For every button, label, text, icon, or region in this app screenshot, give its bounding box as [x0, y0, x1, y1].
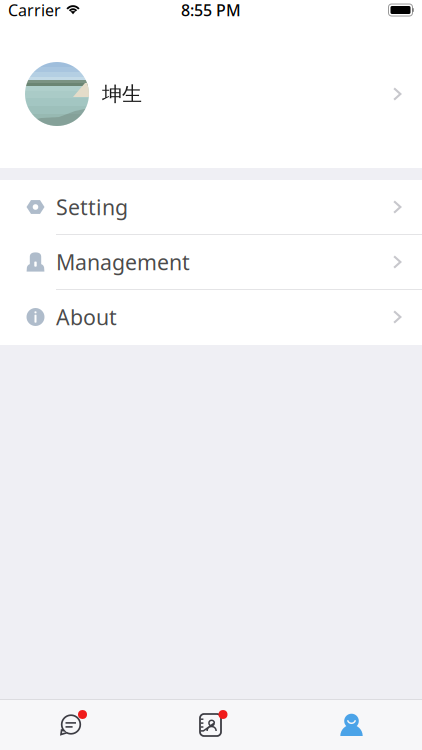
- staticText: Setting: [56, 193, 128, 221]
- button[interactable]: Management: [0, 235, 422, 290]
- staticText: 坤生: [102, 82, 142, 106]
- button[interactable]: Profile: [321, 703, 381, 747]
- button[interactable]: 坤生: [0, 20, 422, 168]
- button[interactable]: Messages: [40, 703, 100, 747]
- button[interactable]: Setting: [0, 180, 422, 235]
- button[interactable]: Contacts: [180, 703, 240, 747]
- staticText: About: [56, 303, 117, 331]
- staticText: Management: [56, 248, 190, 276]
- button[interactable]: About: [0, 290, 422, 345]
- staticText: Carrier: [8, 0, 61, 21]
- staticText: 8:55 PM: [181, 0, 241, 21]
